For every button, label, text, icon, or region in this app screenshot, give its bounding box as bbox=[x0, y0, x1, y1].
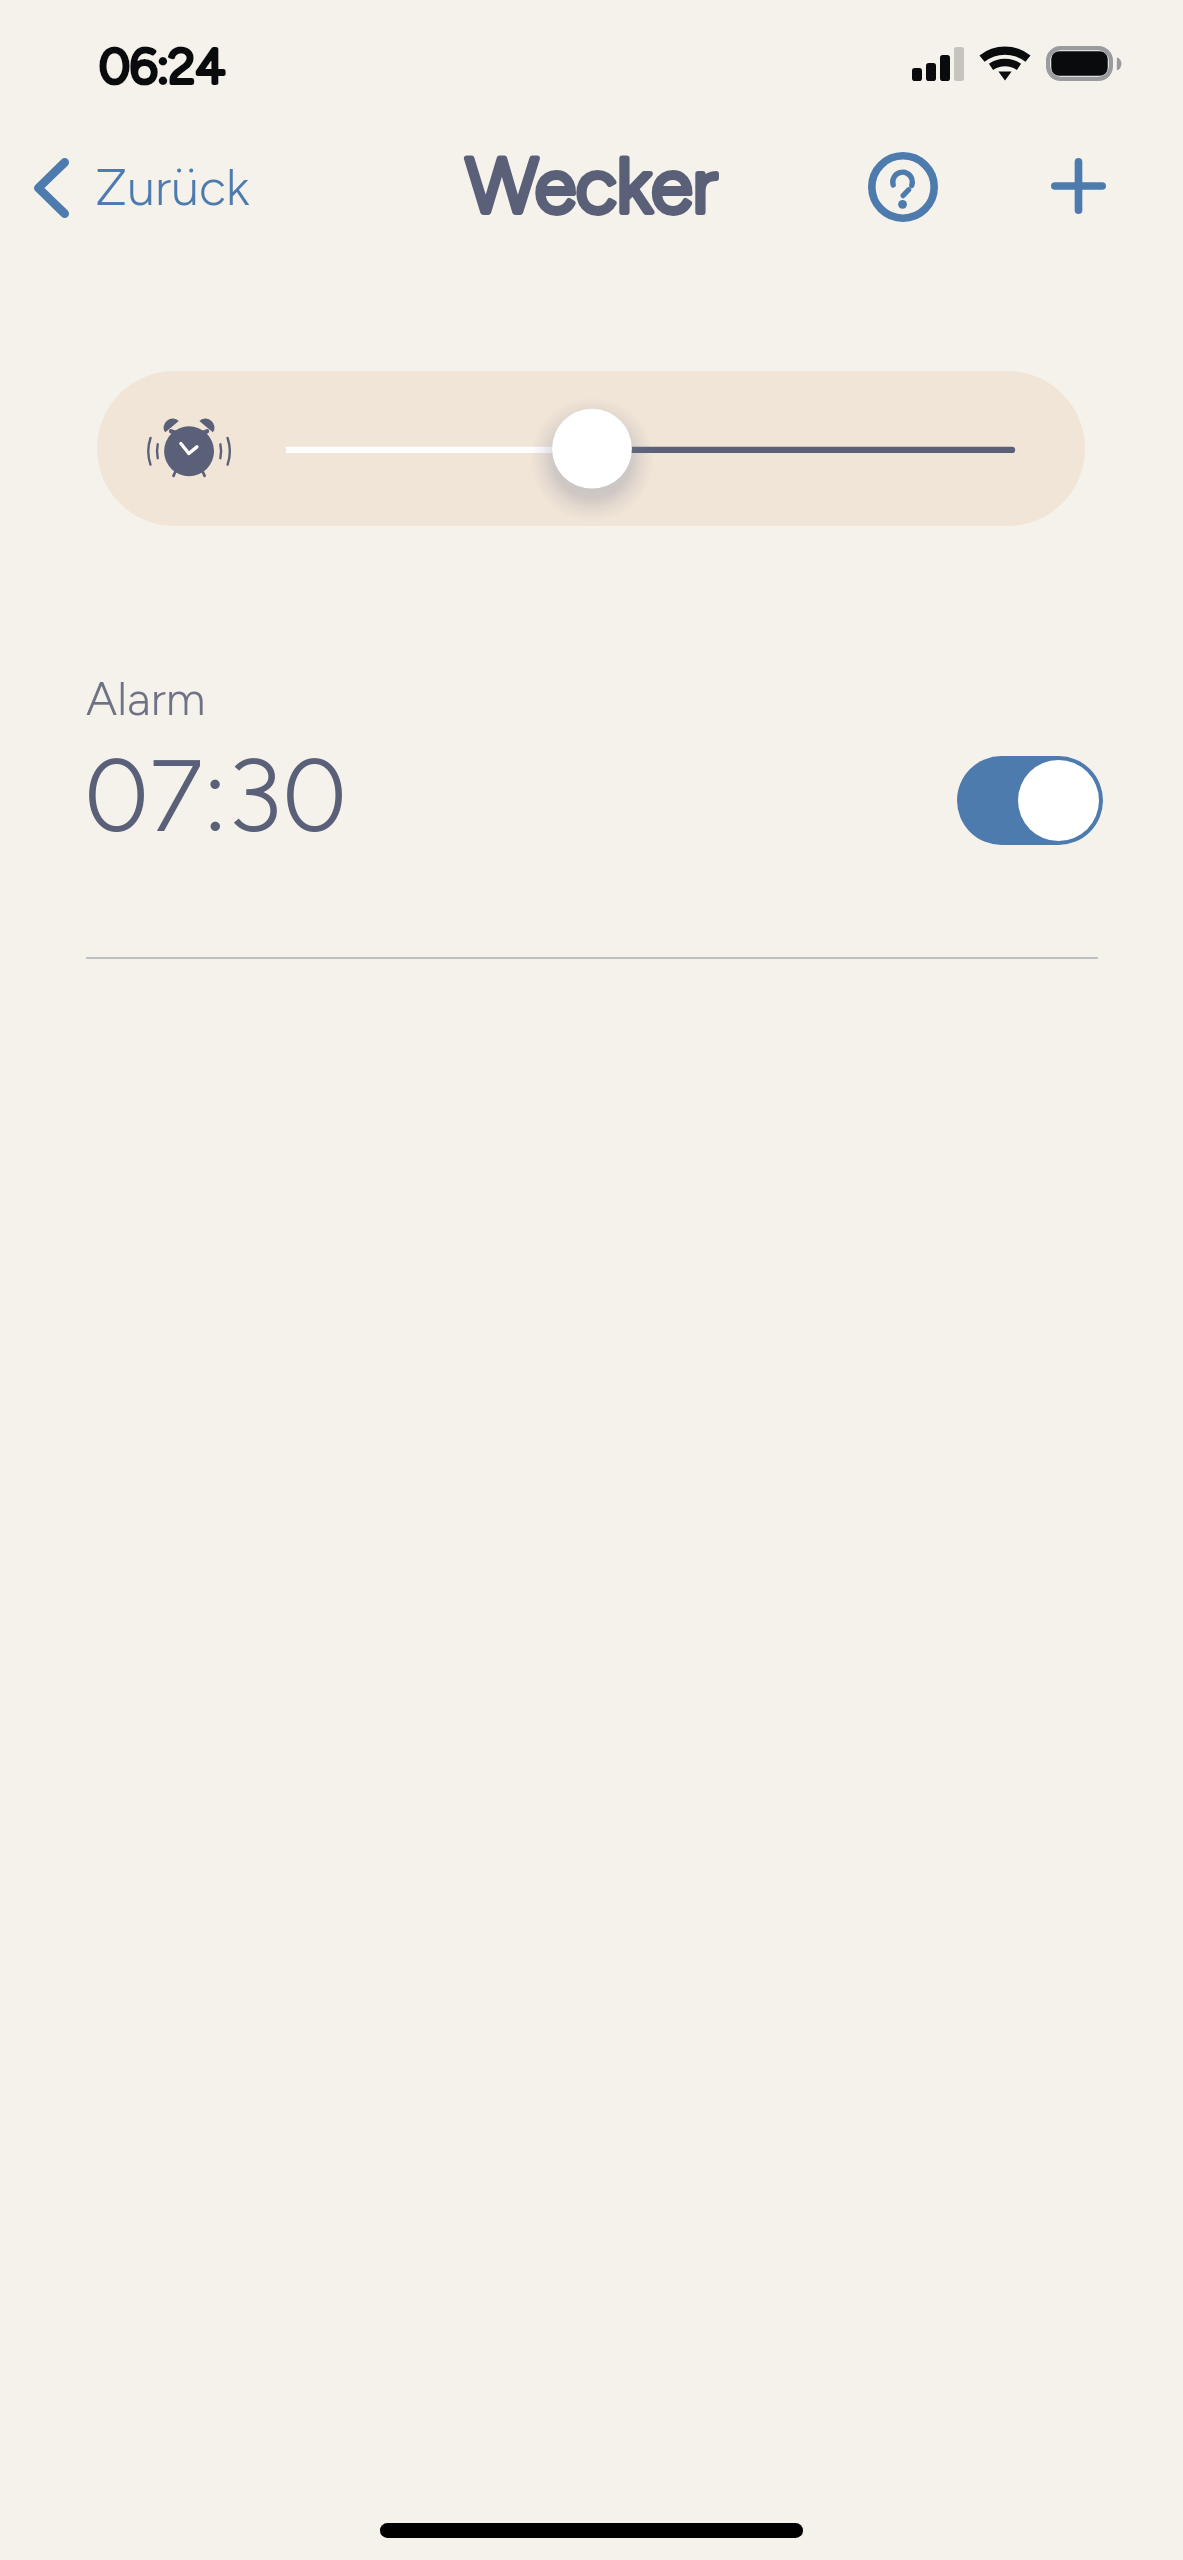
staticText: Zurück bbox=[95, 157, 250, 217]
button[interactable]: Alarm enabled bbox=[957, 756, 1103, 845]
button[interactable]: Zurück bbox=[15, 132, 274, 243]
button[interactable]: Alarm bbox=[84, 645, 1098, 975]
staticText: Wecker bbox=[466, 140, 717, 231]
staticText: 07:30 bbox=[84, 734, 348, 856]
button[interactable] bbox=[97, 371, 1085, 526]
staticText: Alarm bbox=[86, 670, 206, 727]
staticText: 06:24 bbox=[99, 37, 226, 95]
button[interactable]: Help bbox=[837, 121, 969, 253]
staticText: Wecker bbox=[466, 140, 717, 231]
staticText: 06:24 bbox=[99, 37, 226, 95]
button[interactable]: Add alarm bbox=[1012, 120, 1144, 252]
